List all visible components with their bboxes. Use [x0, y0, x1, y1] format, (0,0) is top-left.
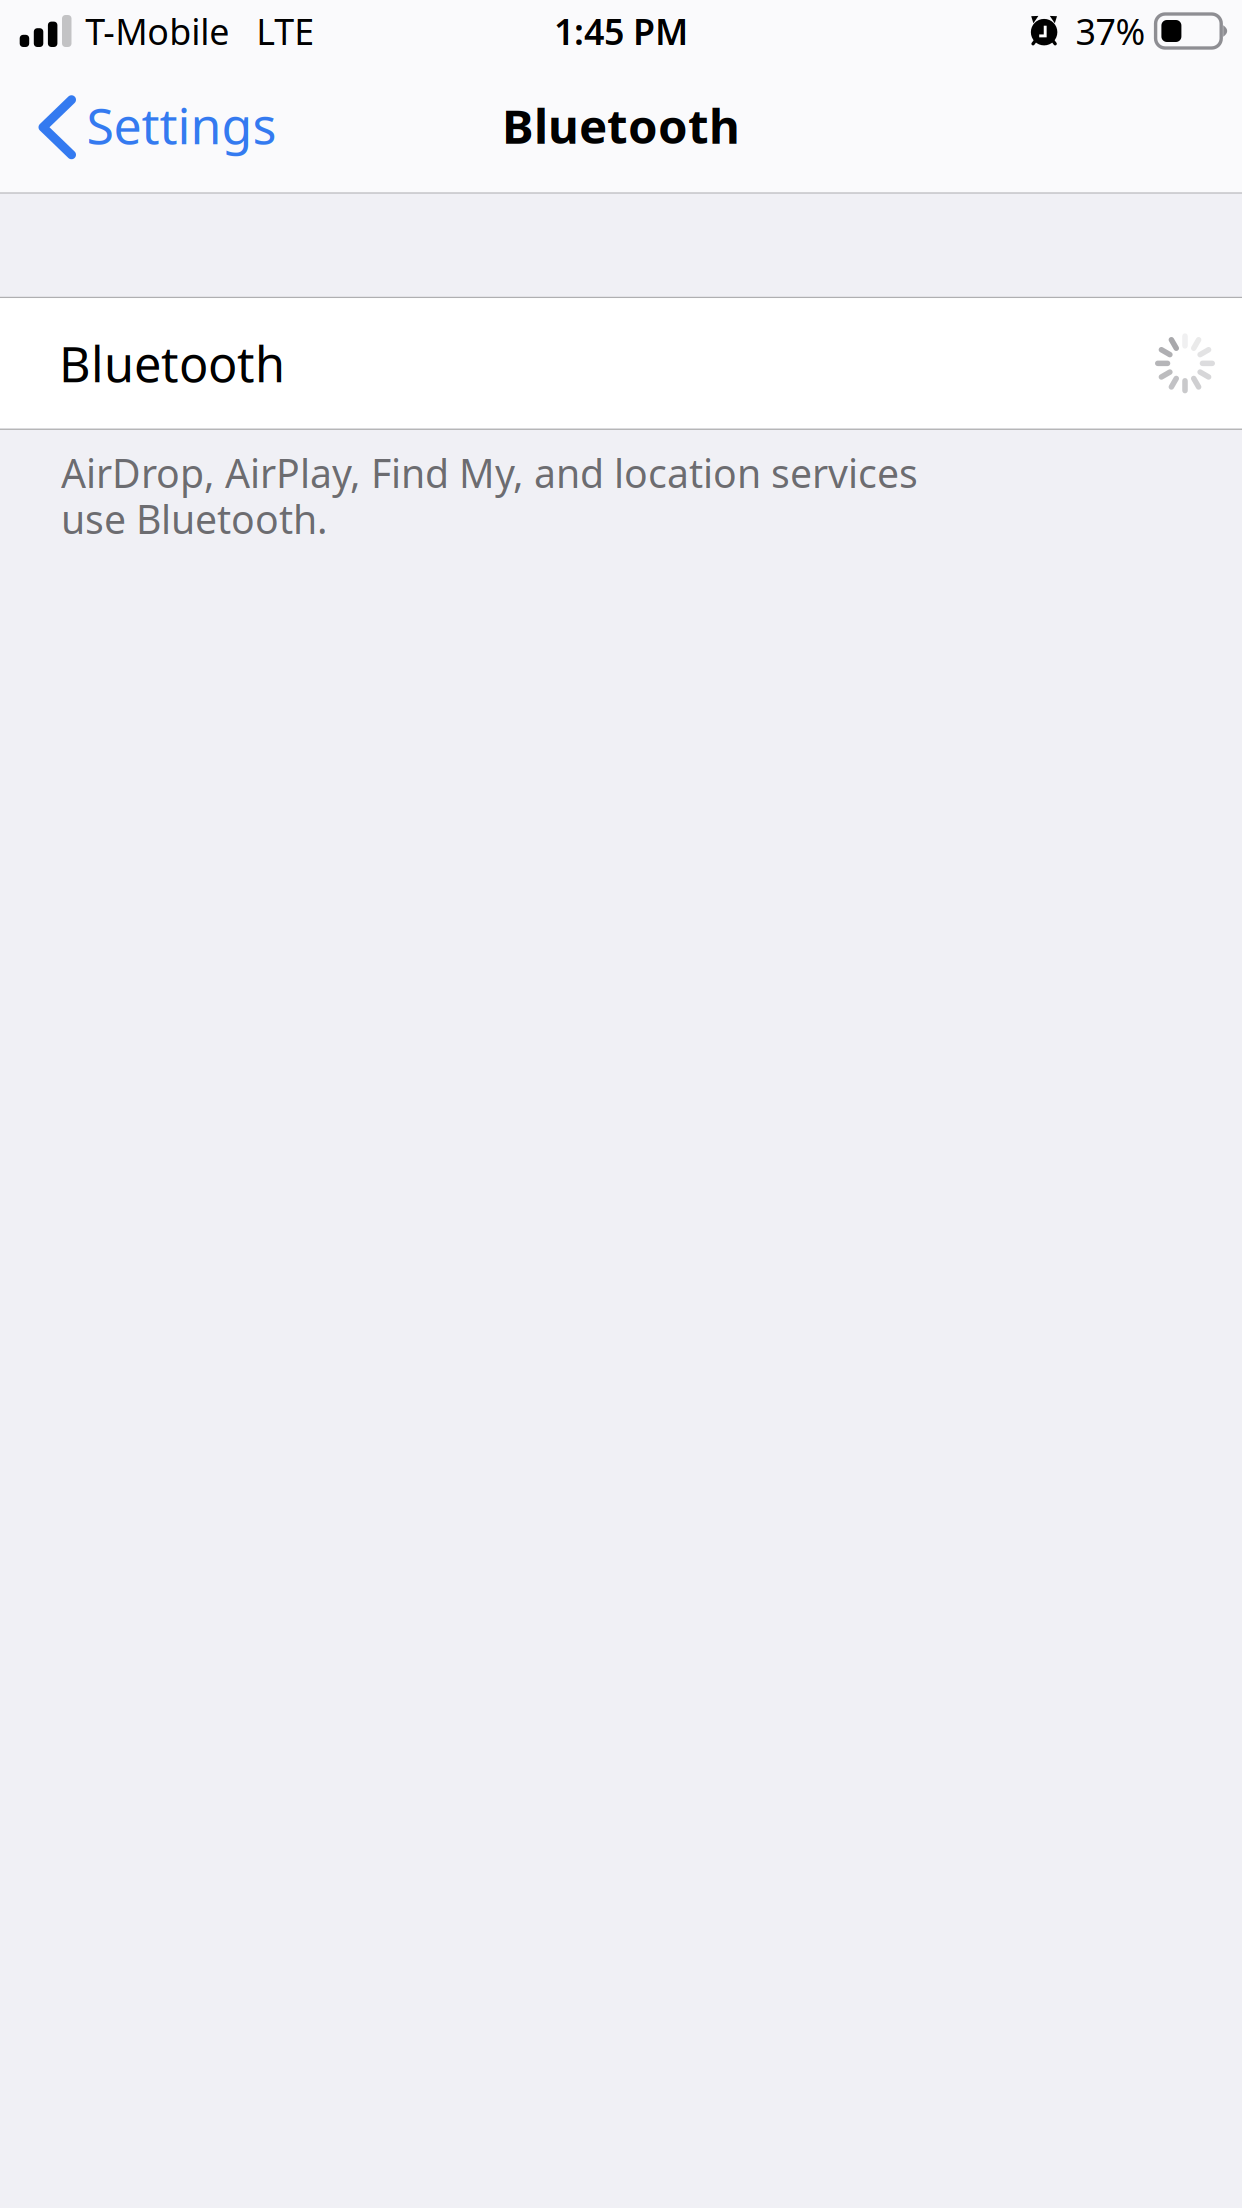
staticText: LTE	[256, 7, 314, 55]
staticText: 37%	[1076, 7, 1146, 55]
staticText: Settings	[86, 91, 276, 159]
button[interactable]: Bluetooth, turning on	[0, 298, 1242, 429]
staticText: T-Mobile	[85, 7, 229, 55]
staticText: Bluetooth	[59, 330, 285, 396]
staticText: 1:45 PM	[554, 7, 688, 55]
button[interactable]: Back to Settings	[0, 78, 300, 176]
staticText: Bluetooth	[502, 93, 740, 158]
staticText: AirDrop, AirPlay, Find My, and location …	[61, 450, 918, 542]
